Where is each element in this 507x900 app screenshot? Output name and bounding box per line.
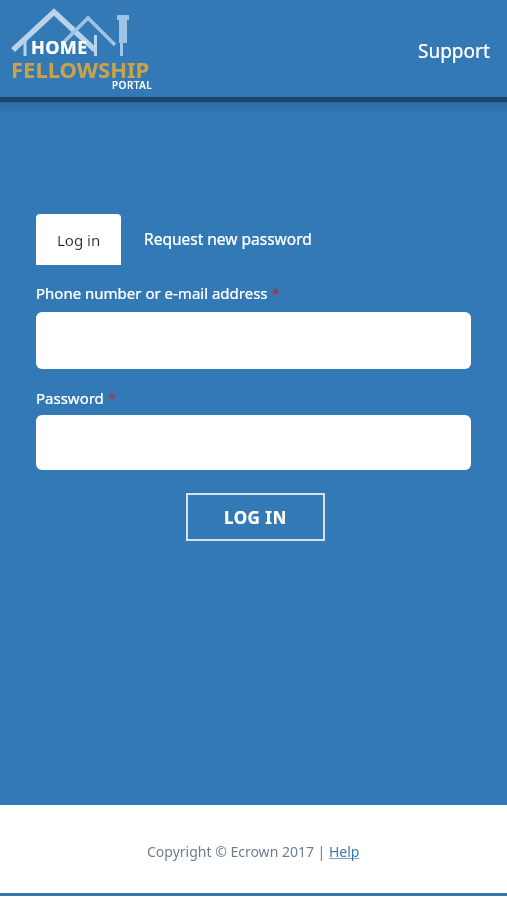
button[interactable]: LOG IN [186,493,325,541]
staticText: HOME [31,35,88,60]
button[interactable]: Copyright © Ecrown 2017 | Help [143,838,364,865]
staticText: Phone number or e-mail address * [36,283,280,303]
staticText: Copyright © Ecrown 2017 | Help [147,842,360,861]
staticText: Request new password [144,228,312,249]
staticText: Password * [36,388,117,408]
staticText: PORTAL [112,78,153,92]
staticText: Support [418,38,490,64]
staticText: FELLOWSHIP [11,54,150,84]
button[interactable] [36,312,471,369]
staticText: LOG IN [224,506,287,529]
staticText: Log in [57,230,101,250]
button[interactable]: Request new password [140,224,316,253]
button[interactable]: Log in [36,214,121,265]
button[interactable]: Support [410,30,498,72]
button[interactable] [36,415,471,470]
